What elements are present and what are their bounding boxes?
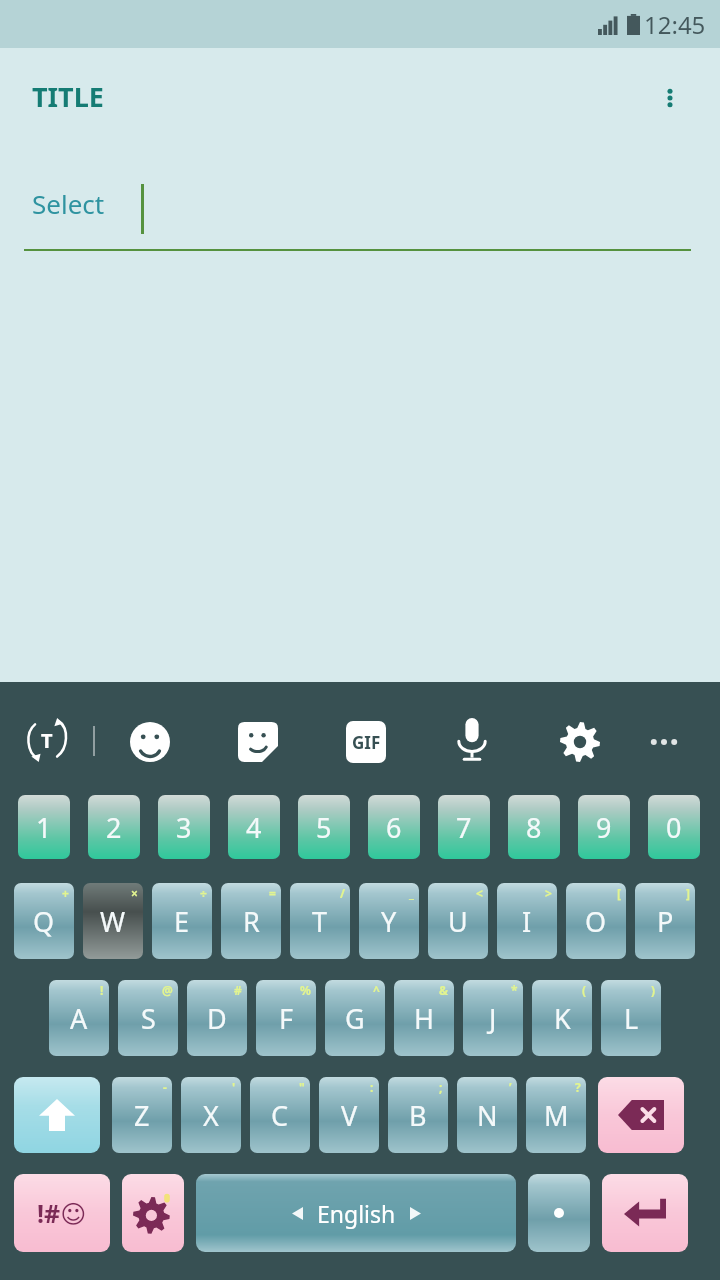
button[interactable]: Stickers <box>234 718 282 766</box>
staticText: ] <box>686 885 690 901</box>
button[interactable]: Backspace <box>598 1077 684 1153</box>
staticText: 0 <box>666 809 682 846</box>
button[interactable]: 6 <box>368 795 420 859</box>
staticText: Q <box>33 903 55 940</box>
staticText: ( <box>582 982 587 998</box>
button[interactable]: Voice input <box>448 716 496 764</box>
button[interactable]: X <box>181 1077 241 1153</box>
button[interactable]: 2 <box>88 795 140 859</box>
staticText: : <box>370 1079 374 1095</box>
button[interactable]: D <box>187 980 247 1056</box>
staticText: Y <box>381 903 397 940</box>
staticText: 9 <box>596 809 612 846</box>
staticText: ? <box>575 1079 581 1095</box>
staticText: > <box>545 885 552 901</box>
button[interactable]: 4 <box>228 795 280 859</box>
button[interactable]: G <box>325 980 385 1056</box>
button[interactable]: 7 <box>438 795 490 859</box>
button[interactable]: Select <box>32 186 105 221</box>
button[interactable]: I <box>497 883 557 959</box>
staticText: _ <box>409 885 414 901</box>
staticText: & <box>439 982 449 998</box>
staticText: / <box>340 885 345 901</box>
button[interactable]: J <box>463 980 523 1056</box>
button[interactable]: GIF <box>342 718 390 766</box>
staticText: J <box>489 1000 497 1037</box>
staticText: @ <box>162 982 173 998</box>
staticText: GIF <box>352 731 381 754</box>
button[interactable]: Shift <box>14 1077 100 1153</box>
staticText: = <box>269 885 276 901</box>
staticText: × <box>131 885 138 901</box>
staticText: ’ <box>509 1079 512 1095</box>
button[interactable]: O <box>566 883 626 959</box>
button[interactable]: 5 <box>298 795 350 859</box>
button[interactable]: Period <box>528 1174 590 1252</box>
button[interactable]: A <box>49 980 109 1056</box>
staticText: D <box>207 1000 227 1037</box>
button[interactable]: More options <box>648 76 692 120</box>
staticText: W <box>100 903 126 940</box>
staticText: ^ <box>373 982 380 998</box>
button[interactable]: Translate <box>22 715 72 765</box>
button[interactable]: Enter <box>602 1174 688 1252</box>
staticText: English <box>317 1198 396 1229</box>
staticText: < <box>476 885 483 901</box>
staticText: L <box>624 1000 639 1037</box>
staticText: X <box>203 1097 219 1134</box>
staticText: " <box>299 1079 305 1095</box>
staticText: F <box>279 1000 294 1037</box>
button[interactable]: T <box>290 883 350 959</box>
button[interactable]: 8 <box>508 795 560 859</box>
button[interactable]: Symbols <box>14 1174 110 1252</box>
staticText: 2 <box>106 809 122 846</box>
button[interactable]: B <box>388 1077 448 1153</box>
staticText: Z <box>134 1097 150 1134</box>
staticText: 6 <box>386 809 402 846</box>
button[interactable]: R <box>221 883 281 959</box>
button[interactable]: F <box>256 980 316 1056</box>
button[interactable]: W <box>83 883 143 959</box>
button[interactable]: L <box>601 980 661 1056</box>
button[interactable]: 3 <box>158 795 210 859</box>
button[interactable]: Q <box>14 883 74 959</box>
staticText: 4 <box>246 809 262 846</box>
button[interactable]: H <box>394 980 454 1056</box>
staticText: I <box>522 903 532 940</box>
staticText: 7 <box>456 809 472 846</box>
button[interactable]: U <box>428 883 488 959</box>
staticText: N <box>477 1097 498 1134</box>
staticText: - <box>163 1079 167 1095</box>
staticText: % <box>300 982 311 998</box>
staticText: ! <box>100 982 104 998</box>
button[interactable]: 9 <box>578 795 630 859</box>
button[interactable]: TITLE <box>32 78 104 115</box>
button[interactable]: Z <box>112 1077 172 1153</box>
button[interactable]: M <box>526 1077 586 1153</box>
staticText: E <box>174 903 190 940</box>
staticText: O <box>585 903 607 940</box>
button[interactable]: P <box>635 883 695 959</box>
staticText: ' <box>232 1079 236 1095</box>
button[interactable]: E <box>152 883 212 959</box>
staticText: M <box>544 1097 569 1134</box>
button[interactable]: Emoji <box>126 718 174 766</box>
staticText: P <box>657 903 674 940</box>
staticText: V <box>341 1097 358 1134</box>
button[interactable]: 0 <box>648 795 700 859</box>
button[interactable]: Keyboard settings <box>122 1174 184 1252</box>
staticText: R <box>243 903 260 940</box>
button[interactable]: C <box>250 1077 310 1153</box>
button[interactable]: V <box>319 1077 379 1153</box>
button[interactable]: S <box>118 980 178 1056</box>
button[interactable]: N <box>457 1077 517 1153</box>
button[interactable]: K <box>532 980 592 1056</box>
button[interactable]: Space, English <box>196 1174 516 1252</box>
staticText: 12:45 <box>644 8 706 41</box>
staticText: T <box>312 903 328 940</box>
button[interactable]: 1 <box>18 795 70 859</box>
button[interactable]: Y <box>359 883 419 959</box>
button[interactable]: More <box>640 718 688 766</box>
button[interactable]: Settings <box>556 718 604 766</box>
staticText: 5 <box>316 809 332 846</box>
